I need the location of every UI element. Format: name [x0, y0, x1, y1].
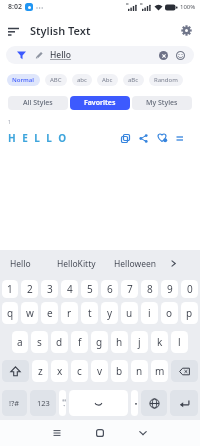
staticText: 8:02	[8, 2, 22, 12]
staticText: aBc	[128, 76, 139, 84]
button[interactable]: w	[21, 302, 38, 324]
button[interactable]: k	[151, 331, 168, 353]
button[interactable]: 5	[81, 280, 98, 298]
button[interactable]: abc	[72, 74, 92, 86]
button[interactable]: Helloween	[114, 258, 156, 270]
button[interactable]	[176, 134, 184, 142]
button[interactable]: t	[81, 302, 98, 324]
button[interactable]: My Styles	[132, 96, 192, 110]
button[interactable]	[69, 390, 128, 416]
staticText: 6	[107, 282, 113, 296]
button[interactable]: 6	[101, 280, 118, 298]
button[interactable]: 9	[161, 280, 178, 298]
button[interactable]: e	[41, 302, 58, 324]
button[interactable]	[139, 429, 147, 437]
button[interactable]: z	[32, 360, 48, 382]
button[interactable]: o	[161, 302, 178, 324]
button[interactable]: !?#	[2, 390, 27, 416]
button[interactable]	[59, 390, 66, 416]
button[interactable]: v	[91, 360, 108, 382]
button[interactable]	[121, 134, 130, 143]
button[interactable]	[53, 429, 61, 437]
button[interactable]	[139, 134, 148, 143]
staticText: Abc	[102, 76, 113, 84]
button[interactable]: Abc	[97, 74, 118, 86]
button[interactable]: Normal	[7, 74, 40, 86]
button[interactable]: c	[71, 360, 88, 382]
button[interactable]: 1	[0, 110, 200, 145]
button[interactable]: j	[131, 331, 148, 353]
staticText: 9	[167, 282, 173, 296]
button[interactable]	[8, 25, 20, 37]
button[interactable]: 7	[121, 280, 138, 298]
staticText: a	[17, 335, 23, 349]
button[interactable]: 0	[181, 280, 198, 298]
staticText: b	[116, 364, 123, 378]
button[interactable]: 123	[30, 390, 56, 416]
staticText: l	[178, 335, 181, 349]
staticText: q	[7, 306, 14, 320]
button[interactable]: y	[101, 302, 118, 324]
button[interactable]: aBc	[123, 74, 144, 86]
button[interactable]	[176, 51, 185, 60]
button[interactable]: h	[111, 331, 128, 353]
button[interactable]: b	[111, 360, 128, 382]
button[interactable]: g	[91, 331, 108, 353]
button[interactable]	[157, 133, 168, 144]
button[interactable]: l	[171, 331, 188, 353]
button[interactable]: f	[71, 331, 88, 353]
staticText: 1	[7, 282, 13, 296]
button[interactable]: All Styles	[8, 96, 68, 110]
staticText: s	[37, 335, 42, 349]
button[interactable]: i	[141, 302, 158, 324]
button[interactable]: ABC	[45, 74, 67, 86]
button[interactable]: x	[51, 360, 68, 382]
button[interactable]: Hello	[10, 258, 31, 270]
staticText: n	[136, 364, 143, 378]
staticText: abc	[77, 76, 87, 84]
staticText: ABC	[50, 76, 62, 84]
button[interactable]	[181, 25, 192, 36]
button[interactable]: s	[31, 331, 48, 353]
button[interactable]: 1	[2, 280, 18, 298]
button[interactable]: Random	[149, 74, 183, 86]
button[interactable]: u	[121, 302, 138, 324]
button[interactable]: n	[131, 360, 148, 382]
staticText: 123	[37, 398, 50, 408]
staticText: 1	[8, 119, 11, 126]
staticText: p	[186, 306, 193, 320]
button[interactable]: r	[61, 302, 78, 324]
button[interactable]	[159, 51, 168, 60]
button[interactable]: d	[51, 331, 68, 353]
button[interactable]	[96, 429, 104, 437]
staticText: o	[166, 306, 173, 320]
staticText: t	[88, 306, 92, 320]
staticText: m	[155, 364, 165, 378]
staticText: f	[78, 335, 82, 349]
button[interactable]	[171, 360, 198, 382]
button[interactable]: HelloKitty	[57, 258, 96, 270]
staticText: 4	[67, 282, 73, 296]
button[interactable]	[131, 390, 138, 416]
staticText: 0	[187, 282, 193, 296]
button[interactable]: 8	[141, 280, 158, 298]
button[interactable]: m	[151, 360, 168, 382]
staticText: d	[56, 335, 63, 349]
button[interactable]	[170, 260, 177, 267]
button[interactable]: Hello	[6, 46, 194, 64]
staticText: w	[26, 306, 34, 320]
button[interactable]	[2, 360, 29, 382]
button[interactable]: 4	[61, 280, 78, 298]
button[interactable]	[141, 390, 167, 416]
staticText: !?#	[9, 398, 20, 408]
staticText: 100%	[180, 3, 196, 11]
button[interactable]: Favorites	[70, 96, 130, 110]
button[interactable]: 3	[41, 280, 58, 298]
staticText: e	[47, 306, 53, 320]
button[interactable]: a	[12, 331, 28, 353]
button[interactable]	[170, 390, 198, 416]
button[interactable]: p	[181, 302, 198, 324]
staticText: Favorites	[84, 98, 116, 108]
button[interactable]: q	[2, 302, 18, 324]
button[interactable]: 2	[21, 280, 38, 298]
